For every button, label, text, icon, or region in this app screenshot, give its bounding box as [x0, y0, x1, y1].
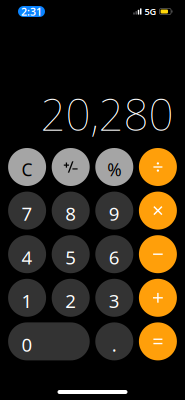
staticText: . — [112, 332, 117, 357]
staticText: 20,280 — [40, 85, 173, 143]
staticText: 9 — [109, 201, 120, 226]
staticText: 0 — [22, 332, 33, 357]
staticText: 2 — [65, 288, 76, 313]
button[interactable]: 6 — [95, 235, 133, 273]
staticText: 5G — [144, 5, 156, 18]
staticText: 5 — [65, 245, 76, 270]
staticText: 4 — [22, 245, 33, 270]
button[interactable]: 5 — [52, 235, 90, 273]
staticText: 7 — [22, 201, 33, 226]
button[interactable]: Equals — [139, 322, 177, 360]
staticText: 3 — [109, 288, 120, 313]
button[interactable]: . — [95, 322, 133, 360]
staticText: 6 — [109, 245, 120, 270]
staticText: C — [22, 158, 33, 181]
button[interactable]: 7 — [8, 192, 46, 230]
button[interactable]: Plus — [139, 279, 177, 317]
button[interactable]: Plus minus — [52, 148, 90, 186]
button[interactable]: Divide — [139, 148, 177, 186]
button[interactable]: 4 — [8, 235, 46, 273]
button[interactable]: 8 — [52, 192, 90, 230]
staticText: 2:31 — [21, 4, 42, 19]
button[interactable]: 2 — [52, 279, 90, 317]
button[interactable]: Multiply — [139, 192, 177, 230]
staticText: 8 — [65, 201, 76, 226]
button[interactable]: 9 — [95, 192, 133, 230]
button[interactable]: 3 — [95, 279, 133, 317]
button[interactable]: 0 — [8, 322, 90, 360]
staticText: 1 — [22, 288, 33, 313]
button[interactable]: 1 — [8, 279, 46, 317]
button[interactable]: % — [95, 148, 133, 186]
button[interactable]: Minus — [139, 235, 177, 273]
staticText: % — [107, 158, 121, 181]
button[interactable]: C — [8, 148, 46, 186]
